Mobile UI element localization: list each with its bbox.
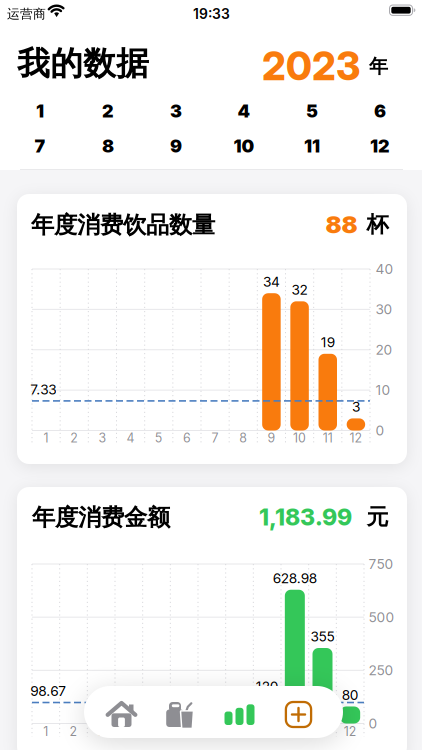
staticText: 8 [102,135,114,157]
staticText: 运营商 [7,6,46,22]
staticText: 9 [263,724,271,739]
button[interactable]: 8 [88,132,128,160]
staticText: 杯 [366,211,388,238]
staticText: 10 [293,430,306,445]
staticText: 4 [127,430,135,445]
button[interactable]: 2 [88,97,128,125]
staticText: 3 [170,100,182,122]
staticText: 10 [233,135,254,157]
staticText: 10 [288,724,301,739]
staticText: 年度消费金额 [32,503,170,532]
staticText: 9 [267,430,275,445]
staticText: 5 [306,100,318,122]
staticText: 7 [34,135,45,157]
staticText: 2023 [262,43,360,90]
staticText: 80 [342,687,359,703]
staticText: 我的数据 [17,43,149,84]
staticText: 2 [70,430,78,445]
staticText: 2 [102,100,114,122]
staticText: 500 [368,609,394,625]
staticText: 11 [304,135,320,157]
staticText: 12 [370,135,390,157]
button[interactable]: 4 [224,97,264,125]
button[interactable] [93,688,149,740]
staticText: 750 [368,556,393,572]
staticText: 355 [310,628,334,645]
staticText: 3 [352,399,360,415]
staticText: 12 [344,724,357,739]
staticText: 7 [212,430,219,445]
staticText: 32 [292,281,308,298]
staticText: 120 [256,678,279,695]
staticText: 年度消费饮品数量 [31,210,215,240]
button[interactable]: 7 [20,132,60,160]
staticText: 1 [43,724,48,739]
staticText: 7 [208,724,215,739]
staticText: 20 [375,341,392,358]
staticText: 12 [349,430,362,445]
button[interactable]: 11 [292,132,332,160]
staticText: 10 [375,382,390,398]
staticText: 40 [375,261,393,277]
staticText: 1 [44,430,49,445]
staticText: 4 [125,724,133,739]
staticText: 2 [69,724,77,739]
staticText: 3 [97,724,105,739]
staticText: 9 [170,135,182,157]
staticText: 年 [369,54,388,78]
staticText: 5 [152,724,160,739]
button[interactable]: 1 [20,97,60,125]
staticText: 0 [375,422,384,439]
staticText: 6 [374,100,386,122]
button[interactable] [151,688,207,740]
staticText: 34 [263,273,280,290]
staticText: 1,183.99 [259,503,352,531]
staticText: 98.67 [30,683,66,699]
button[interactable]: 10 [224,132,264,160]
staticText: 250 [368,662,393,679]
button[interactable]: 6 [360,97,400,125]
staticText: 88 [325,210,357,239]
staticText: 8 [235,724,243,739]
button[interactable]: 2023 [262,43,388,90]
staticText: 11 [317,724,327,739]
button[interactable]: 12 [360,132,400,160]
staticText: 3 [98,430,106,445]
button[interactable]: 9 [156,132,196,160]
staticText: 7.33 [30,381,56,398]
staticText: 11 [323,430,333,445]
staticText: 1 [36,100,44,122]
staticText: 628.98 [273,570,317,586]
staticText: 4 [237,100,250,122]
staticText: 8 [239,430,247,445]
staticText: 19 [321,334,335,351]
staticText: 30 [375,301,392,318]
button[interactable]: 3 [156,97,196,125]
staticText: 5 [155,430,163,445]
staticText: 元 [366,503,388,531]
button[interactable] [211,688,267,740]
staticText: 6 [180,724,188,739]
staticText: 6 [183,430,191,445]
button[interactable]: 5 [292,97,332,125]
staticText: 0 [368,715,377,732]
staticText: 19:33 [193,6,230,22]
button[interactable] [270,688,326,740]
